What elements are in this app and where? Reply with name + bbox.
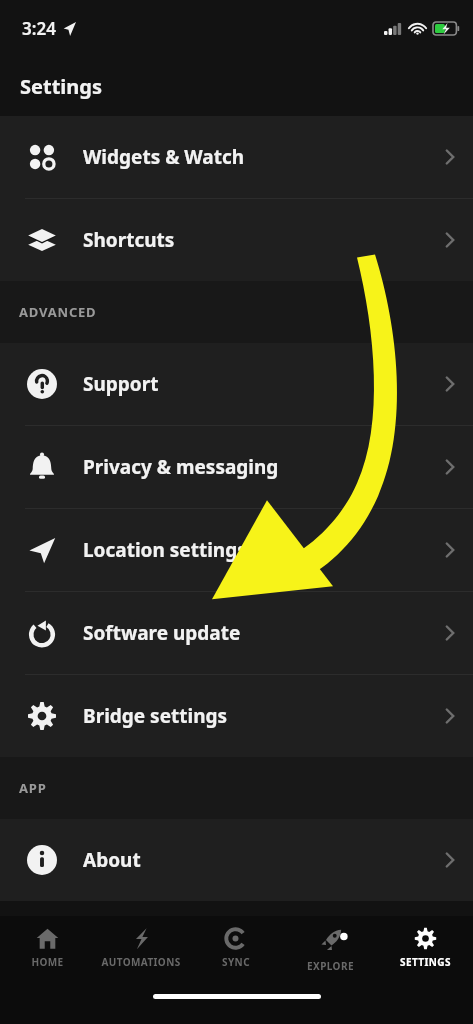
button[interactable]: Location settings (0, 509, 473, 591)
button[interactable]: SETTINGS (378, 916, 473, 980)
staticText: About (83, 847, 441, 873)
button[interactable]: Support (0, 343, 473, 425)
button[interactable]: EXPLORE (283, 916, 378, 980)
staticText: HOME (31, 955, 64, 969)
button[interactable]: Shortcuts (0, 199, 473, 281)
button[interactable]: Widgets & Watch (0, 116, 473, 198)
staticText: Software update (83, 620, 441, 646)
staticText: 3:24 (22, 17, 56, 40)
staticText: Widgets & Watch (83, 144, 441, 170)
staticText: Support (83, 371, 441, 397)
staticText: ADVANCED (19, 303, 97, 321)
staticText: Settings (20, 73, 102, 100)
staticText: Bridge settings (83, 703, 441, 729)
staticText: Privacy & messaging (83, 454, 441, 480)
button[interactable]: Privacy & messaging (0, 426, 473, 508)
staticText: EXPLORE (307, 959, 354, 973)
button[interactable]: SYNC (188, 916, 283, 980)
staticText: Location settings (83, 537, 441, 563)
button[interactable]: About (0, 819, 473, 901)
button[interactable]: AUTOMATIONS (94, 916, 188, 980)
button[interactable]: HOME (0, 916, 94, 980)
button[interactable]: Software update (0, 592, 473, 674)
staticText: APP (19, 779, 47, 797)
staticText: SYNC (222, 955, 250, 969)
staticText: Shortcuts (83, 227, 441, 253)
button[interactable]: Bridge settings (0, 675, 473, 757)
staticText: AUTOMATIONS (101, 955, 181, 969)
staticText: SETTINGS (400, 955, 451, 969)
